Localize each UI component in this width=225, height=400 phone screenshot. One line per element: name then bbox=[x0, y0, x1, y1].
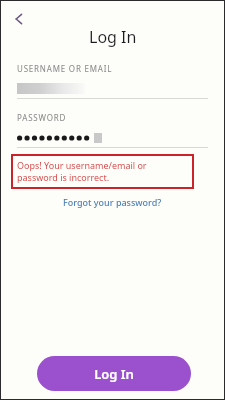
staticText: Oops! Your username/email or password is… bbox=[17, 159, 188, 184]
staticText: USERNAME OR EMAIL bbox=[17, 63, 113, 74]
button[interactable] bbox=[17, 131, 208, 144]
staticText: PASSWORD bbox=[17, 112, 67, 123]
staticText: Log In bbox=[89, 26, 137, 48]
staticText: Forgot your password? bbox=[63, 196, 162, 208]
button[interactable]: Log In bbox=[37, 356, 191, 391]
button[interactable] bbox=[17, 83, 208, 95]
button[interactable]: Forgot your password? bbox=[55, 194, 170, 210]
button[interactable]: Back bbox=[5, 5, 33, 33]
staticText: Log In bbox=[94, 365, 134, 383]
